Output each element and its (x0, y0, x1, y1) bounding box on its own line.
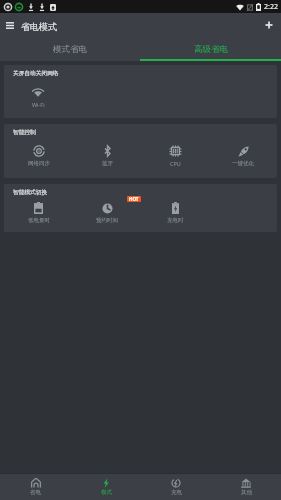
staticText: 模式 (101, 489, 112, 496)
staticText: HOT (129, 196, 139, 202)
staticText: 关屏自动关闭网络 (13, 70, 59, 77)
staticText: 省电模式 (21, 21, 57, 32)
button[interactable]: Add (259, 15, 279, 35)
staticText: 2:22 (264, 2, 278, 12)
staticText: 低电量时 (28, 217, 50, 224)
button[interactable]: CPU (141, 145, 209, 167)
button[interactable]: 预约时间 (73, 202, 141, 224)
button[interactable]: Menu (0, 15, 20, 35)
staticText: 模式省电 (53, 44, 87, 55)
staticText: 智能模式切换 (13, 189, 48, 196)
button[interactable]: Wi-Fi (4, 86, 72, 108)
button[interactable]: 其他 (211, 474, 281, 500)
staticText: 充电时 (167, 217, 184, 224)
staticText: CPU (170, 160, 181, 167)
staticText: 蓝牙 (102, 160, 113, 167)
button[interactable]: 模式 (71, 474, 141, 500)
button[interactable]: 省电 (0, 474, 71, 500)
staticText: 预约时间 (96, 217, 118, 224)
button[interactable]: 高级省电 (140, 40, 281, 59)
staticText: 其他 (241, 489, 252, 496)
button[interactable]: 蓝牙 (73, 145, 141, 167)
staticText: 网络同步 (28, 160, 50, 167)
staticText: 省电 (30, 489, 41, 496)
button[interactable]: 充电时 (141, 202, 209, 224)
button[interactable]: 一键优化 (209, 145, 277, 167)
staticText: Wi-Fi (32, 101, 45, 108)
button[interactable]: 网络同步 (4, 145, 73, 167)
button[interactable]: 低电量时 (4, 202, 73, 224)
staticText: 一键优化 (232, 160, 254, 167)
button[interactable]: 模式省电 (0, 40, 140, 59)
staticText: 智能控制 (13, 129, 36, 136)
staticText: 高级省电 (194, 44, 228, 55)
button[interactable]: 充电 (141, 474, 211, 500)
staticText: 充电 (171, 489, 182, 496)
